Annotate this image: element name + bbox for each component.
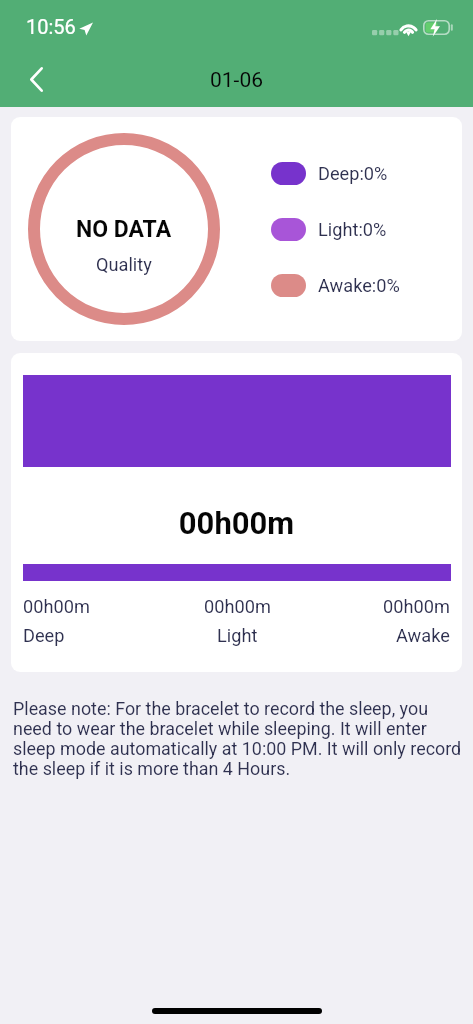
- staticText: Awake: [396, 625, 450, 646]
- staticText: 10:56: [26, 15, 76, 38]
- staticText: NO DATA: [76, 216, 172, 243]
- staticText: Light:0%: [318, 219, 387, 240]
- staticText: 00h00m: [383, 596, 450, 617]
- button[interactable]: Sleep stages detail: [11, 353, 462, 672]
- staticText: Please note: For the bracelet to record …: [13, 698, 462, 780]
- staticText: 00h00m: [204, 596, 271, 617]
- staticText: Deep: [23, 625, 65, 646]
- button[interactable]: Deep:0%: [271, 162, 388, 185]
- staticText: Awake:0%: [318, 275, 400, 296]
- staticText: 00h00m: [23, 596, 90, 617]
- button[interactable]: Sleep quality summary: [11, 117, 462, 341]
- staticText: Deep:0%: [318, 163, 388, 184]
- staticText: 00h00m: [11, 505, 462, 541]
- button[interactable]: Awake:0%: [271, 274, 400, 297]
- staticText: 01-06: [0, 68, 473, 93]
- button[interactable]: Light:0%: [271, 218, 387, 241]
- button[interactable]: Back: [14, 57, 59, 102]
- staticText: Light: [217, 625, 258, 646]
- staticText: Quality: [96, 254, 152, 275]
